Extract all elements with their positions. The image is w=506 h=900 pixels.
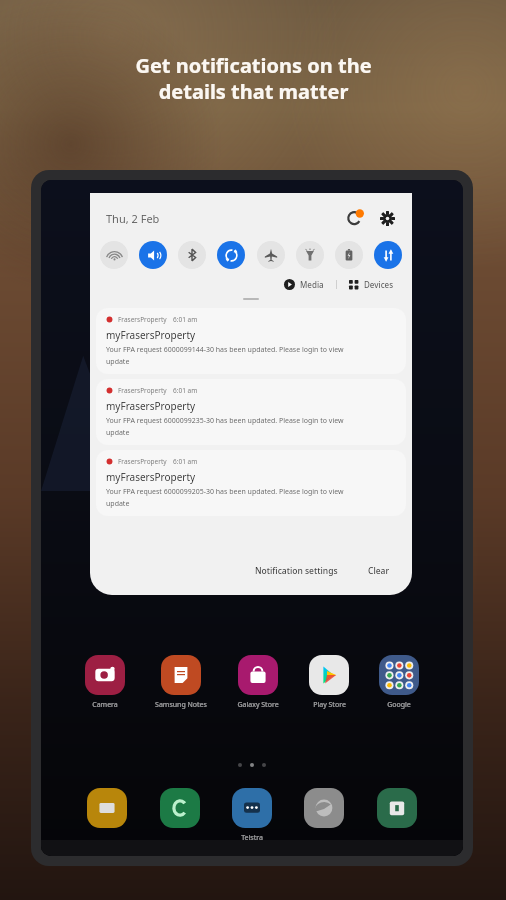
button[interactable]: Flashlight xyxy=(296,241,324,269)
staticText: Media xyxy=(300,279,324,290)
button[interactable]: Galaxy Store xyxy=(237,655,279,710)
staticText: Camera xyxy=(92,700,118,710)
button[interactable]: Google xyxy=(379,655,419,710)
staticText: myFrasersProperty xyxy=(106,470,196,484)
button[interactable]: Devices xyxy=(349,279,394,290)
button[interactable]: Camera xyxy=(85,655,125,710)
staticText: Your FPA request 6000099144-30 has been … xyxy=(106,345,344,366)
button[interactable]: Bluetooth xyxy=(178,241,206,269)
staticText: FrasersProperty xyxy=(118,315,167,324)
button[interactable]: Settings xyxy=(376,207,398,229)
button[interactable]: FrasersProperty xyxy=(96,450,406,516)
button[interactable] xyxy=(377,788,417,833)
staticText: myFrasersProperty xyxy=(106,399,196,413)
button[interactable] xyxy=(304,788,344,833)
staticText: myFrasersProperty xyxy=(106,328,196,342)
staticText: Telstra xyxy=(241,833,263,843)
staticText: 6:01 am xyxy=(173,315,198,324)
staticText: 6:01 am xyxy=(173,457,198,466)
button[interactable] xyxy=(160,788,200,833)
button[interactable]: FrasersProperty xyxy=(96,379,406,445)
button[interactable]: Mobile data xyxy=(374,241,402,269)
staticText: FrasersProperty xyxy=(118,386,167,395)
button[interactable]: Battery xyxy=(335,241,363,269)
button[interactable]: Sync xyxy=(217,241,245,269)
button[interactable]: Sound xyxy=(139,241,167,269)
staticText: FrasersProperty xyxy=(118,457,167,466)
button[interactable]: Device care xyxy=(344,207,366,229)
button[interactable]: Clear xyxy=(364,561,394,581)
staticText: Galaxy Store xyxy=(237,700,279,710)
staticText: Your FPA request 6000099235-30 has been … xyxy=(106,416,344,437)
button[interactable]: FrasersProperty xyxy=(96,308,406,374)
button[interactable]: Telstra xyxy=(232,788,272,843)
staticText: Notification settings xyxy=(255,565,338,577)
button[interactable]: Airplane mode xyxy=(257,241,285,269)
staticText: Thu, 2 Feb xyxy=(106,211,160,226)
button[interactable]: Wi-Fi xyxy=(100,241,128,269)
button[interactable]: Play Store xyxy=(309,655,349,710)
staticText: Get notifications on the details that ma… xyxy=(135,52,372,105)
button[interactable]: Samsung Notes xyxy=(155,655,207,710)
staticText: Devices xyxy=(364,279,394,290)
button[interactable] xyxy=(87,788,127,833)
button[interactable]: Notification settings xyxy=(251,561,342,581)
staticText: Samsung Notes xyxy=(155,700,207,710)
button[interactable]: Media xyxy=(284,279,324,290)
staticText: Play Store xyxy=(313,700,346,710)
staticText: Your FPA request 6000099205-30 has been … xyxy=(106,487,344,508)
staticText: 6:01 am xyxy=(173,386,198,395)
staticText: Google xyxy=(387,700,411,710)
staticText: Clear xyxy=(368,565,390,577)
